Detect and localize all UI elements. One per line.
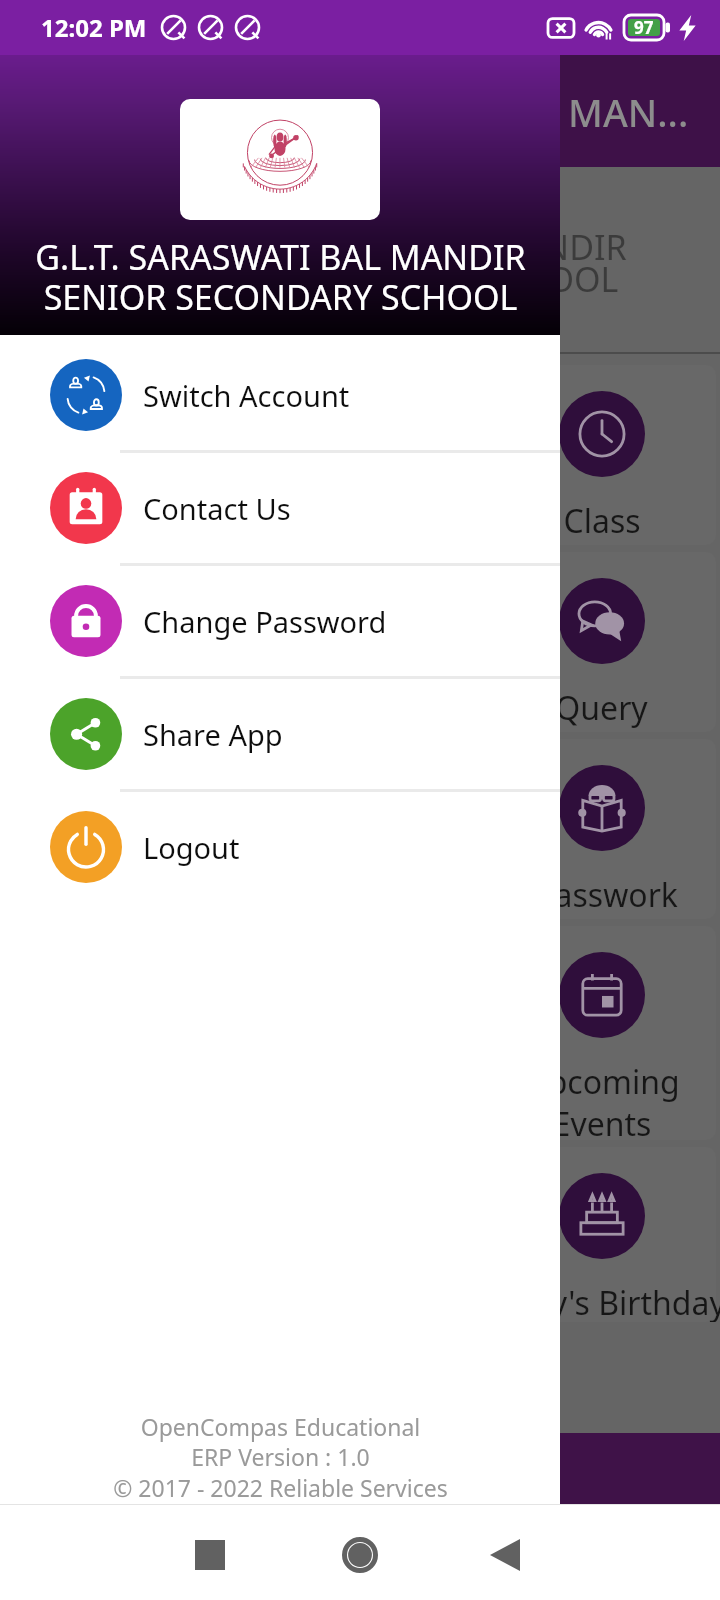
staticText: G.L.T. SARASWATI BAL MANDIR SENIOR SECON…	[136, 224, 627, 302]
staticText: G.L.T. SARASWATI BAL MANDIR SENIOR SECON…	[35, 234, 526, 320]
staticText: Upcoming Events	[524, 1060, 680, 1140]
staticText: 97	[634, 16, 654, 39]
button[interactable]	[487, 1147, 716, 1322]
staticText: OpenCompas Educational ERP Version : 1.0…	[113, 1411, 448, 1504]
staticText: Logout	[143, 828, 240, 867]
button[interactable]: Switch Account	[0, 340, 560, 450]
button[interactable]: Back	[471, 1521, 539, 1589]
staticText: Change Password	[143, 602, 387, 641]
button[interactable]: Recent apps	[176, 1521, 244, 1589]
staticText: 12:02 PM	[41, 11, 147, 44]
staticText: Query	[555, 686, 648, 730]
button[interactable]	[487, 365, 716, 545]
button[interactable]	[487, 926, 716, 1140]
button[interactable]: Contact Us	[0, 453, 560, 563]
button[interactable]: Share App	[0, 679, 560, 789]
button[interactable]	[487, 739, 716, 919]
button[interactable]	[487, 552, 716, 732]
staticText: Class	[563, 499, 641, 543]
staticText: Today's Birthday	[478, 1281, 720, 1322]
button[interactable]: Home	[326, 1521, 394, 1589]
staticText: Share App	[143, 715, 283, 754]
staticText: Contact Us	[143, 489, 291, 528]
staticText: Classwork	[526, 873, 678, 917]
staticText: Switch Account	[143, 376, 350, 415]
button[interactable]: Change Password	[0, 566, 560, 676]
button[interactable]: Logout	[0, 792, 560, 902]
staticText: MAN...	[568, 86, 689, 138]
